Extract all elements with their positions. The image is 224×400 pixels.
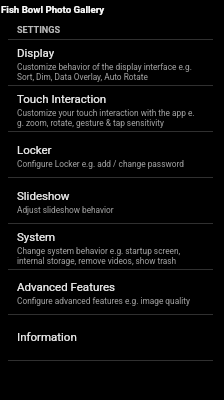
button[interactable]: Advanced Features [0, 270, 224, 314]
staticText: Display [17, 46, 55, 59]
staticText: Change system behavior e.g. startup scre… [17, 246, 181, 266]
staticText: Locker [17, 143, 52, 156]
button[interactable]: Locker [0, 132, 224, 177]
staticText: Information [17, 330, 77, 343]
button[interactable]: Touch Interaction [0, 86, 224, 131]
staticText: System [17, 230, 56, 243]
button[interactable]: Information [0, 315, 224, 360]
staticText: Configure advanced features e.g. image q… [17, 296, 190, 306]
staticText: Adjust slideshow behavior [17, 205, 114, 215]
staticText: Customize your touch interaction with th… [17, 108, 195, 128]
staticText: Customize behavior of the display interf… [17, 62, 192, 82]
staticText: SETTINGS [17, 25, 61, 36]
button[interactable]: Display [0, 40, 224, 85]
staticText: Fish Bowl Photo Gallery [1, 4, 105, 15]
staticText: Touch Interaction [17, 92, 107, 105]
staticText: Slideshow [17, 189, 70, 202]
button[interactable]: System [0, 224, 224, 269]
button[interactable]: Slideshow [0, 178, 224, 223]
staticText: Advanced Features [17, 280, 116, 293]
staticText: Configure Locker e.g. add / change passw… [17, 159, 184, 169]
